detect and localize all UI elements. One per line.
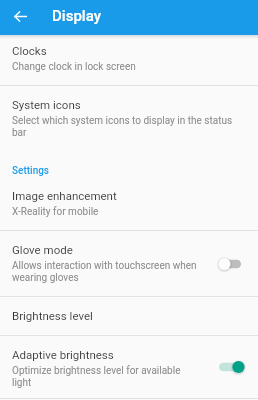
button[interactable]: System icons bbox=[0, 86, 258, 142]
button[interactable]: Adaptive brightness bbox=[0, 336, 258, 398]
button[interactable]: Image enhancement bbox=[0, 182, 258, 230]
button[interactable]: Switch off bbox=[209, 251, 241, 277]
staticText: Allows interaction with touchscreen when… bbox=[12, 260, 197, 284]
staticText: Select which system icons to display in … bbox=[12, 115, 237, 139]
staticText: Glove mode bbox=[12, 243, 73, 256]
staticText: Clocks bbox=[12, 44, 47, 57]
staticText: Display bbox=[52, 7, 101, 25]
staticText: X-Reality for mobile bbox=[12, 206, 99, 218]
button[interactable]: Back bbox=[0, 0, 41, 32]
staticText: Brightness level bbox=[12, 309, 93, 322]
button[interactable]: Clocks bbox=[0, 36, 258, 85]
button[interactable]: Glove mode bbox=[0, 231, 258, 296]
staticText: Change clock in lock screen bbox=[12, 61, 136, 73]
staticText: Image enhancement bbox=[12, 189, 117, 202]
staticText: Optimize brightness level for available … bbox=[12, 365, 197, 389]
staticText: System icons bbox=[12, 98, 81, 111]
button[interactable]: Brightness level bbox=[0, 297, 258, 335]
staticText: Settings bbox=[12, 165, 50, 177]
button[interactable]: Switch on bbox=[209, 354, 241, 380]
staticText: Adaptive brightness bbox=[12, 348, 114, 361]
